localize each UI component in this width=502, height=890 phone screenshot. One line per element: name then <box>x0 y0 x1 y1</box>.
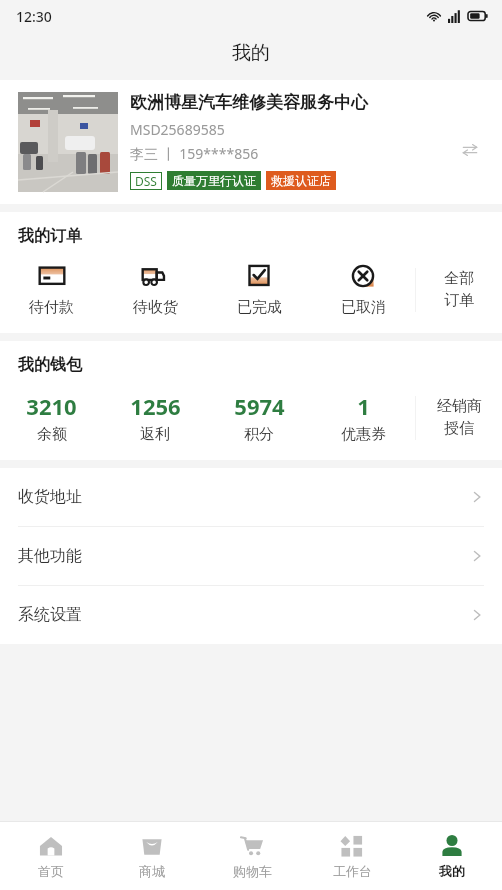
button[interactable]: 1256 <box>103 389 207 446</box>
button[interactable]: 我的 <box>402 822 502 890</box>
staticText: 我的钱包 <box>18 355 82 375</box>
staticText: 我的 <box>232 41 270 65</box>
button[interactable]: 经销商 <box>416 393 502 442</box>
staticText: 待付款 <box>29 298 74 317</box>
staticText: 12:30 <box>16 7 52 26</box>
button[interactable]: 欧洲博星汽车维修美容服务中心 <box>0 80 502 204</box>
staticText: 商城 <box>139 863 165 879</box>
staticText: 返利 <box>140 425 170 444</box>
staticText: 经销商 <box>437 397 482 416</box>
button[interactable]: 已完成 <box>207 260 311 319</box>
staticText: 李三 丨 159****856 <box>130 144 259 163</box>
staticText: 授信 <box>444 419 474 438</box>
staticText: 其他功能 <box>18 546 82 566</box>
button[interactable]: 系统设置 <box>0 586 502 644</box>
staticText: 待收货 <box>133 298 178 317</box>
staticText: 1 <box>357 391 370 421</box>
staticText: 首页 <box>38 863 64 879</box>
staticText: 欧洲博星汽车维修美容服务中心 <box>130 92 368 113</box>
button[interactable]: 待付款 <box>0 260 103 319</box>
staticText: 积分 <box>244 425 274 444</box>
staticText: 救援认证店 <box>271 173 331 188</box>
button[interactable]: 首页 <box>0 822 101 890</box>
staticText: 订单 <box>444 291 474 310</box>
button[interactable]: 购物车 <box>202 822 302 890</box>
staticText: 质量万里行认证 <box>172 173 256 188</box>
staticText: 已完成 <box>237 298 282 317</box>
staticText: 收货地址 <box>18 487 82 507</box>
button[interactable]: 1 <box>311 389 415 446</box>
button[interactable]: 待收货 <box>103 260 207 319</box>
staticText: 余额 <box>37 425 67 444</box>
button[interactable]: Switch account <box>456 136 484 164</box>
button[interactable]: 工作台 <box>302 822 402 890</box>
staticText: 全部 <box>444 269 474 288</box>
staticText: 系统设置 <box>18 605 82 625</box>
staticText: 优惠券 <box>341 425 386 444</box>
button[interactable]: 已取消 <box>311 260 415 319</box>
button[interactable]: 3210 <box>0 389 103 446</box>
staticText: 已取消 <box>341 298 386 317</box>
button[interactable]: 商城 <box>101 822 202 890</box>
staticText: 我的订单 <box>18 226 82 246</box>
button[interactable]: 全部 <box>416 265 502 314</box>
staticText: 我的 <box>439 863 465 879</box>
staticText: 购物车 <box>233 863 272 879</box>
staticText: 3210 <box>26 391 77 421</box>
staticText: 工作台 <box>333 863 372 879</box>
button[interactable]: 其他功能 <box>0 527 502 585</box>
button[interactable]: 5974 <box>207 389 311 446</box>
button[interactable]: 收货地址 <box>0 468 502 526</box>
staticText: 1256 <box>130 391 181 421</box>
staticText: 5974 <box>234 391 285 421</box>
staticText: DSS <box>135 173 157 189</box>
staticText: MSD25689585 <box>130 120 225 139</box>
